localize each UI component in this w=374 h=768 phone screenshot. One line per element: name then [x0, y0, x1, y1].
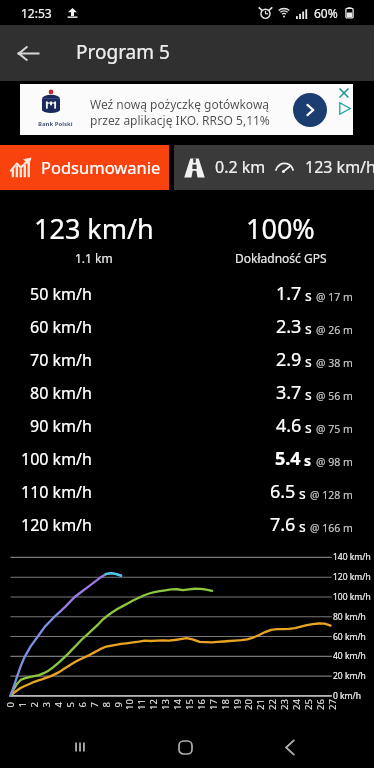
staticText: 3.7 — [276, 380, 302, 405]
staticText: 6 — [75, 701, 88, 707]
staticText: 5 — [63, 701, 76, 707]
button[interactable]: 70 km/h — [0, 343, 374, 376]
staticText: 60 km/h — [333, 631, 366, 643]
staticText: 17 — [207, 699, 220, 710]
staticText: 12:53 — [21, 5, 52, 21]
staticText: Dokładność GPS — [235, 250, 327, 266]
staticText: 23 — [278, 699, 291, 710]
staticText: 4.6 — [276, 413, 302, 438]
button[interactable]: 0.2 km — [174, 145, 374, 190]
button[interactable]: Navigate up — [0, 25, 56, 81]
staticText: s — [299, 484, 306, 503]
button[interactable]: 120 km/h — [0, 508, 374, 541]
staticText: 15 — [183, 699, 196, 710]
button[interactable]: Open advertisement — [293, 93, 327, 127]
staticText: 20 km/h — [333, 670, 366, 682]
staticText: 2.9 — [276, 347, 302, 372]
staticText: Weź nową pożyczkę gotówkową — [90, 96, 270, 112]
staticText: 22 — [266, 699, 279, 710]
staticText: s — [305, 286, 312, 305]
staticText: 123 km/h — [305, 156, 374, 178]
staticText: s — [305, 385, 312, 404]
staticText: 1.7 — [276, 281, 302, 306]
staticText: 120 km/h — [21, 514, 92, 536]
staticText: 21 — [254, 699, 267, 710]
staticText: 1 — [15, 701, 28, 707]
staticText: 7 — [87, 701, 100, 707]
staticText: 40 km/h — [333, 650, 366, 662]
staticText: Program 5 — [76, 39, 170, 65]
staticText: 100 km/h — [21, 448, 92, 470]
staticText: @ 98 m — [316, 455, 353, 469]
staticText: Podsumowanie — [41, 156, 161, 178]
staticText: @ 56 m — [316, 389, 353, 403]
staticText: 3 — [39, 701, 52, 707]
button[interactable]: 50 km/h — [0, 277, 374, 310]
staticText: 24 — [290, 699, 303, 710]
staticText: s — [305, 352, 312, 371]
staticText: 20 — [242, 699, 255, 710]
staticText: 13 — [159, 699, 172, 710]
button[interactable]: 100 km/h — [0, 442, 374, 475]
button[interactable]: 110 km/h — [0, 475, 374, 508]
button[interactable]: 80 km/h — [0, 376, 374, 409]
staticText: 110 km/h — [21, 481, 92, 503]
staticText: 100% — [246, 210, 315, 247]
staticText: 60% — [314, 5, 338, 21]
staticText: @ 26 m — [316, 323, 353, 337]
staticText: 100 km/h — [333, 591, 371, 603]
staticText: s — [304, 451, 312, 470]
staticText: 26 — [314, 699, 327, 710]
staticText: @ 128 m — [310, 488, 353, 502]
staticText: 8 — [99, 701, 112, 707]
staticText: @ 75 m — [316, 422, 353, 436]
button[interactable]: Home — [164, 726, 206, 768]
staticText: s — [299, 517, 306, 536]
staticText: 6.5 — [270, 479, 296, 504]
button[interactable]: Podsumowanie — [0, 145, 169, 190]
staticText: 12 — [147, 699, 160, 710]
staticText: 0.2 km — [215, 156, 266, 178]
staticText: 80 km/h — [333, 611, 366, 623]
staticText: @ 38 m — [316, 356, 353, 370]
staticText: 10 — [123, 699, 136, 710]
staticText: 18 — [219, 699, 232, 710]
staticText: 25 — [302, 699, 315, 710]
staticText: 60 km/h — [30, 316, 92, 338]
staticText: s — [305, 418, 312, 437]
button[interactable]: Close advertisement — [339, 88, 349, 98]
button[interactable]: Recent apps — [59, 726, 101, 768]
button[interactable]: 60 km/h — [0, 310, 374, 343]
button[interactable]: 90 km/h — [0, 409, 374, 442]
staticText: 19 — [231, 699, 244, 710]
staticText: 16 — [195, 699, 208, 710]
button[interactable]: Bank Polski — [20, 84, 353, 135]
staticText: 14 — [171, 699, 184, 710]
staticText: Bank Polski — [38, 120, 73, 128]
staticText: 2.3 — [276, 314, 302, 339]
staticText: 0 — [3, 701, 16, 707]
staticText: 27 — [326, 699, 339, 710]
staticText: 90 km/h — [30, 415, 92, 437]
staticText: 123 km/h — [34, 210, 154, 247]
staticText: 80 km/h — [30, 382, 92, 404]
button[interactable]: Back — [269, 726, 311, 768]
staticText: @ 17 m — [316, 290, 353, 304]
staticText: 4 — [51, 701, 64, 707]
staticText: 2 — [27, 701, 40, 707]
staticText: 0 km/h — [333, 690, 361, 702]
staticText: @ 166 m — [310, 521, 353, 535]
staticText: 70 km/h — [30, 349, 92, 371]
staticText: s — [305, 319, 312, 338]
staticText: przez aplikację IKO. RRSO 5,11% — [90, 112, 270, 128]
staticText: 140 km/h — [333, 551, 371, 563]
staticText: 9 — [111, 701, 124, 707]
staticText: 50 km/h — [30, 283, 92, 305]
staticText: 1.1 km — [75, 250, 113, 266]
staticText: 120 km/h — [333, 571, 371, 583]
staticText: 5.4 — [275, 446, 301, 471]
staticText: 11 — [135, 699, 148, 710]
staticText: 7.6 — [270, 512, 296, 537]
